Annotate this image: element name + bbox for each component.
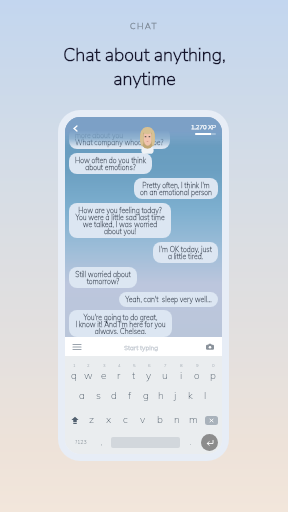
button[interactable]: 9 [189, 356, 205, 386]
button[interactable]: j [168, 385, 183, 405]
button[interactable]: more about you What company whoc... it b… [69, 128, 170, 149]
staticText: , [101, 438, 103, 447]
button[interactable]: c [117, 408, 134, 431]
staticText: l [204, 389, 207, 402]
button[interactable]: 2 [81, 356, 96, 386]
staticText: b [157, 413, 163, 426]
staticText: Still worried about tomorrow? [75, 270, 131, 285]
staticText: CHAT [130, 20, 158, 32]
staticText: more about you What company whoc... it b… [75, 131, 164, 146]
button[interactable]: How are you feeling today? You were a li… [69, 203, 171, 238]
button[interactable]: v [134, 408, 151, 431]
staticText: Pretty often, I think I'm on an emotiona… [140, 181, 212, 196]
staticText: g [143, 389, 149, 402]
staticText: Yeah, can't sleep very well... [125, 295, 212, 304]
staticText: I'm OK today, just a little tired. [159, 245, 212, 260]
button[interactable]: d [106, 385, 122, 405]
staticText: How often do you think about emotions? [75, 156, 146, 171]
staticText: n [174, 413, 180, 426]
staticText: How are you feeling today? You were a li… [75, 206, 165, 235]
staticText: h [158, 389, 164, 402]
button[interactable]: Enter [201, 434, 218, 451]
button[interactable]: 8 [173, 356, 189, 386]
staticText: q [71, 369, 77, 382]
staticText: w [84, 369, 93, 382]
staticText: r [117, 369, 121, 382]
staticText: 0 [212, 363, 215, 368]
staticText: j [174, 389, 177, 402]
button[interactable]: Camera [204, 341, 216, 353]
button[interactable]: Still worried about tomorrow? [69, 267, 137, 288]
staticText: Start typing [124, 343, 159, 351]
button[interactable]: 6 [141, 356, 157, 386]
staticText: c [123, 413, 128, 426]
button[interactable]: 7 [157, 356, 173, 386]
button[interactable]: n [168, 408, 185, 431]
staticText: z [89, 413, 95, 426]
staticText: s [96, 389, 101, 402]
staticText: Chat about anything, anytime [63, 43, 226, 91]
staticText: 3 [103, 363, 106, 368]
staticText: p [210, 369, 216, 382]
button[interactable]: f [122, 385, 138, 405]
button[interactable]: x [100, 408, 117, 431]
staticText: d [111, 389, 117, 402]
button[interactable]: l [198, 385, 213, 405]
button[interactable]: s [90, 385, 106, 405]
staticText: o [194, 369, 200, 382]
staticText: ?123 [75, 439, 87, 446]
button[interactable]: Pretty often, I think I'm on an emotiona… [134, 178, 218, 199]
button[interactable]: k [183, 385, 198, 405]
staticText: y [146, 369, 152, 382]
staticText: You're going to do great, I know it! And… [75, 313, 166, 334]
staticText: 1 [73, 363, 76, 368]
button[interactable]: g [138, 385, 153, 405]
button[interactable]: Yeah, can't sleep very well... [119, 292, 218, 307]
staticText: 5 [133, 363, 136, 368]
staticText: . [190, 438, 192, 447]
button[interactable]: 5 [126, 356, 141, 386]
button[interactable]: a [74, 385, 90, 405]
button[interactable]: I'm OK today, just a little tired. [153, 242, 218, 263]
staticText: 9 [196, 363, 199, 368]
button[interactable]: Shift [67, 414, 83, 426]
staticText: m [189, 413, 198, 426]
staticText: t [132, 369, 136, 382]
button[interactable]: How often do you think about emotions? [69, 153, 152, 174]
button[interactable]: You're going to do great, I know it! And… [69, 310, 172, 337]
staticText: a [79, 389, 85, 402]
staticText: f [128, 389, 132, 402]
button[interactable]: Back [69, 122, 81, 134]
staticText: 1,270 XP [191, 123, 216, 131]
button[interactable]: 1 [66, 356, 81, 386]
staticText: 8 [180, 363, 183, 368]
button[interactable]: b [151, 408, 168, 431]
staticText: 2 [87, 363, 90, 368]
button[interactable]: Backspace [202, 414, 220, 426]
staticText: 4 [118, 363, 121, 368]
button[interactable]: h [153, 385, 168, 405]
button[interactable]: m [185, 408, 202, 431]
button[interactable]: 0 [205, 356, 221, 386]
button[interactable]: 3 [96, 356, 111, 386]
button[interactable]: z [83, 408, 100, 431]
staticText: i [180, 369, 183, 382]
staticText: x [106, 413, 112, 426]
staticText: u [162, 369, 168, 382]
staticText: k [188, 389, 193, 402]
button[interactable]: 4 [111, 356, 126, 386]
button[interactable]: ?123 [69, 431, 92, 454]
staticText: 7 [164, 363, 167, 368]
staticText: e [101, 369, 107, 382]
staticText: 6 [148, 363, 151, 368]
button[interactable]: Menu [71, 341, 83, 353]
staticText: v [140, 413, 146, 426]
